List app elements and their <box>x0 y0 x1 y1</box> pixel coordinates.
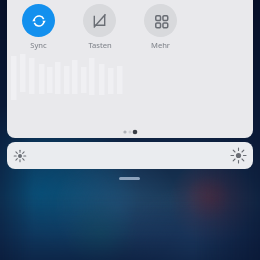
staticText: Mehr <box>151 40 170 50</box>
button[interactable]: Tasten <box>69 4 130 50</box>
button[interactable]: Sync <box>8 4 69 50</box>
button[interactable]: Brightness <box>7 142 253 169</box>
staticText: Sync <box>30 40 47 50</box>
staticText: Tasten <box>88 40 112 50</box>
button[interactable]: Mehr <box>130 4 191 50</box>
